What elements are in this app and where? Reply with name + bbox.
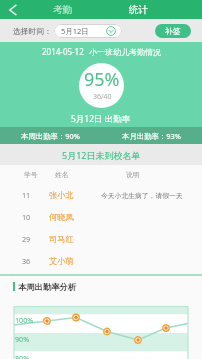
- staticText: 29: [22, 234, 31, 244]
- staticText: 10: [22, 212, 31, 222]
- button[interactable]: 考勤: [25, 0, 101, 19]
- staticText: 何晓凤: [49, 212, 74, 222]
- button[interactable]: 10: [0, 206, 202, 228]
- staticText: 本周出勤率：90%: [21, 131, 80, 141]
- button[interactable]: Back: [0, 0, 26, 19]
- staticText: 36/40: [93, 92, 112, 102]
- staticText: 2014-05-12: [42, 46, 84, 57]
- staticText: 艾小萌: [49, 256, 74, 266]
- staticText: 本月出勤率：93%: [122, 131, 181, 141]
- staticText: 姓名: [55, 170, 69, 179]
- button[interactable]: 5月12日: [54, 24, 122, 38]
- staticText: 司马红: [49, 234, 74, 244]
- staticText: 说明: [126, 170, 140, 179]
- staticText: 选择时间：: [13, 26, 52, 36]
- staticText: 80%: [15, 353, 30, 359]
- staticText: 学号: [24, 170, 38, 179]
- button[interactable]: 29: [0, 228, 202, 250]
- staticText: 90%: [15, 334, 30, 344]
- staticText: 小一班幼儿考勤情况: [89, 47, 161, 57]
- button[interactable]: 补签: [155, 24, 191, 38]
- staticText: 11: [22, 190, 31, 200]
- staticText: 36: [22, 256, 31, 266]
- staticText: 张小北: [49, 190, 74, 200]
- staticText: 95%: [84, 67, 120, 92]
- staticText: 今天小北生病了，请假一天: [101, 191, 183, 200]
- button[interactable]: 11: [0, 184, 202, 206]
- staticText: 本周出勤率分析: [18, 282, 77, 292]
- staticText: 统计: [129, 4, 149, 16]
- staticText: 考勤: [53, 4, 73, 16]
- staticText: 补签: [165, 26, 181, 36]
- button[interactable]: 36: [0, 250, 202, 272]
- button[interactable]: 统计: [101, 0, 177, 19]
- staticText: 5月12日 出勤率: [71, 113, 131, 125]
- staticText: 5月12日未到校名单: [62, 149, 141, 161]
- staticText: 5月12日: [61, 26, 89, 36]
- staticText: 100%: [15, 315, 34, 325]
